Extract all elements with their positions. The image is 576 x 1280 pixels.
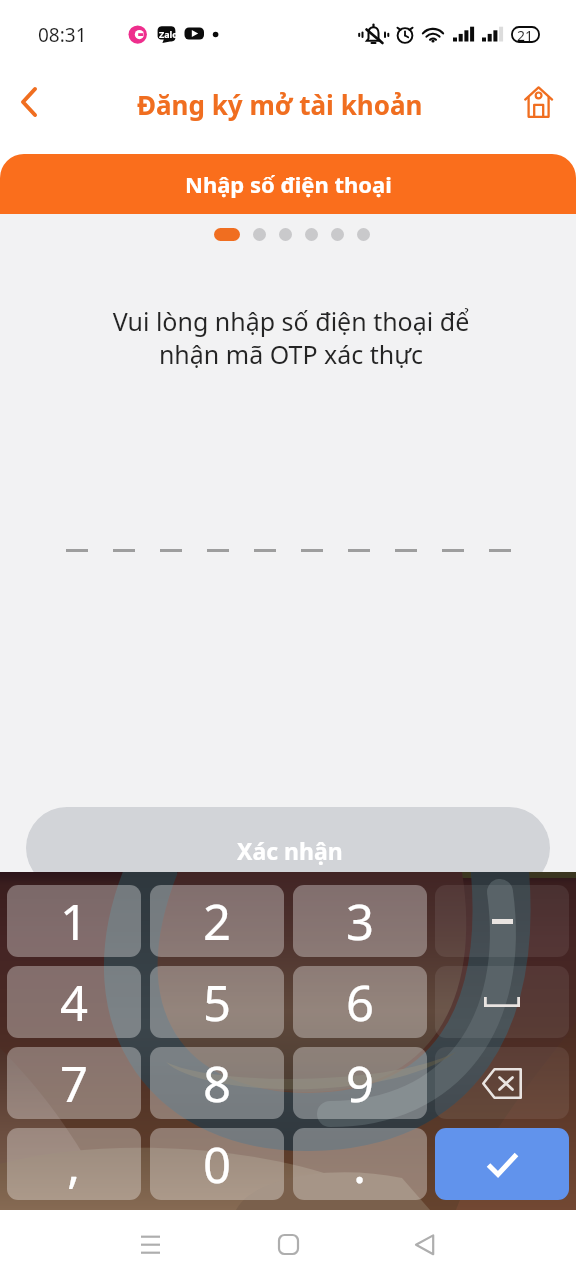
button[interactable]: . (293, 1128, 427, 1200)
button[interactable]: Recent apps (120, 1220, 180, 1280)
button[interactable]: Back (6, 82, 52, 128)
button[interactable]: 1 (7, 885, 141, 957)
button[interactable]: 2 (150, 885, 284, 957)
staticText: . (353, 1131, 367, 1198)
button[interactable]: , (7, 1128, 141, 1200)
staticText: Xác nhận (237, 835, 343, 866)
staticText: 1 (60, 888, 89, 955)
staticText: 7 (60, 1050, 89, 1117)
button[interactable]: Home (516, 82, 562, 128)
staticText: 2 (203, 888, 232, 955)
button[interactable]: 3 (293, 885, 427, 957)
staticText: 5 (203, 969, 232, 1036)
button[interactable]: 6 (293, 966, 427, 1038)
staticText: 4 (60, 969, 89, 1036)
staticText: 8 (203, 1050, 232, 1117)
button[interactable]: 7 (7, 1047, 141, 1119)
staticText: Zalo (159, 28, 178, 40)
button[interactable]: Nhập số điện thoại (0, 154, 576, 214)
button[interactable]: 4 (7, 966, 141, 1038)
button[interactable]: Back (394, 1220, 454, 1280)
button[interactable]: 8 (150, 1047, 284, 1119)
staticText: 6 (346, 969, 375, 1036)
button[interactable]: 0 (150, 1128, 284, 1200)
staticText: Vui lòng nhập số điện thoại để nhận mã O… (3, 304, 576, 371)
button[interactable]: 5 (150, 966, 284, 1038)
staticText: Nhập số điện thoại (185, 169, 392, 199)
staticText: 0 (203, 1131, 232, 1198)
staticText: 9 (346, 1050, 375, 1117)
staticText: 3 (346, 888, 375, 955)
staticText: 21 (517, 26, 534, 45)
button[interactable] (435, 885, 569, 957)
button[interactable]: Enter (435, 1128, 569, 1200)
button[interactable]: 9 (293, 1047, 427, 1119)
staticText: 08:31 (38, 22, 87, 48)
button[interactable]: Space (435, 966, 569, 1038)
staticText: Đăng ký mở tài khoản (137, 87, 423, 122)
button[interactable]: Delete (435, 1047, 569, 1119)
button[interactable]: Home (258, 1220, 318, 1280)
staticText: , (67, 1131, 81, 1198)
button[interactable]: Xác nhận (26, 807, 550, 889)
